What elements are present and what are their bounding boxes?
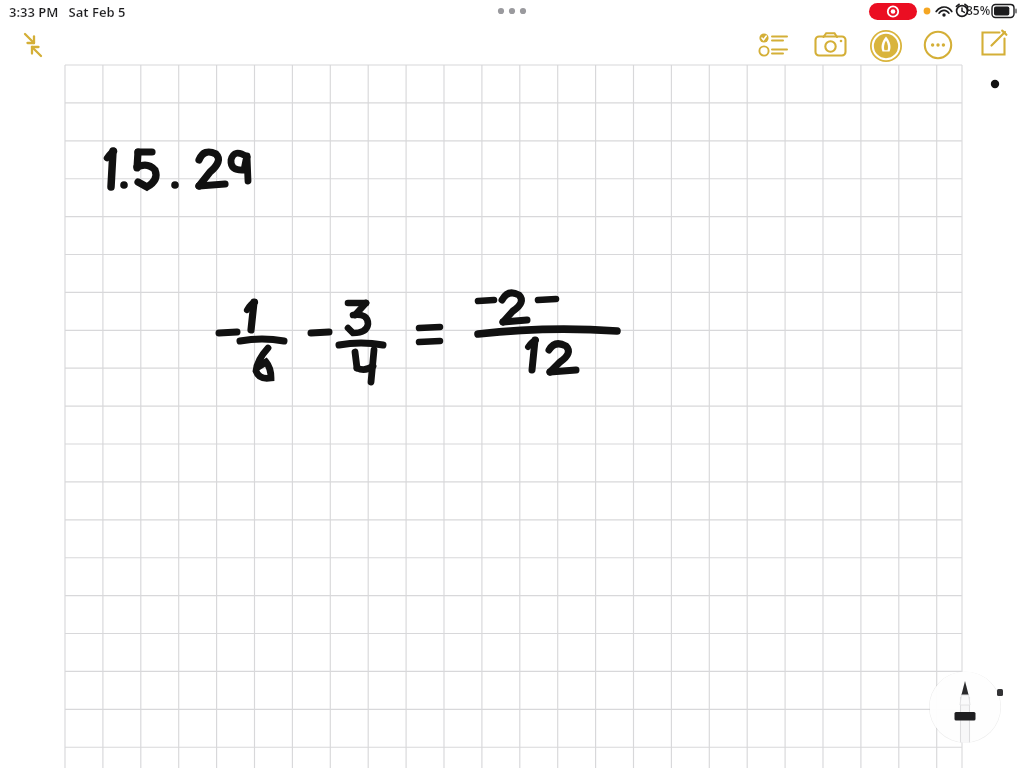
button[interactable]: Pen tool: [929, 671, 1001, 743]
staticText: 85%: [966, 2, 991, 18]
button[interactable]: New note: [978, 29, 1010, 61]
staticText: 3:33 PM Sat Feb 5: [9, 3, 126, 21]
button[interactable]: More options: [922, 30, 954, 60]
button[interactable]: Collapse: [16, 28, 50, 62]
button[interactable]: Camera: [814, 30, 848, 60]
button[interactable]: Ink tool: [868, 28, 904, 64]
button[interactable]: Checklist: [758, 30, 792, 60]
